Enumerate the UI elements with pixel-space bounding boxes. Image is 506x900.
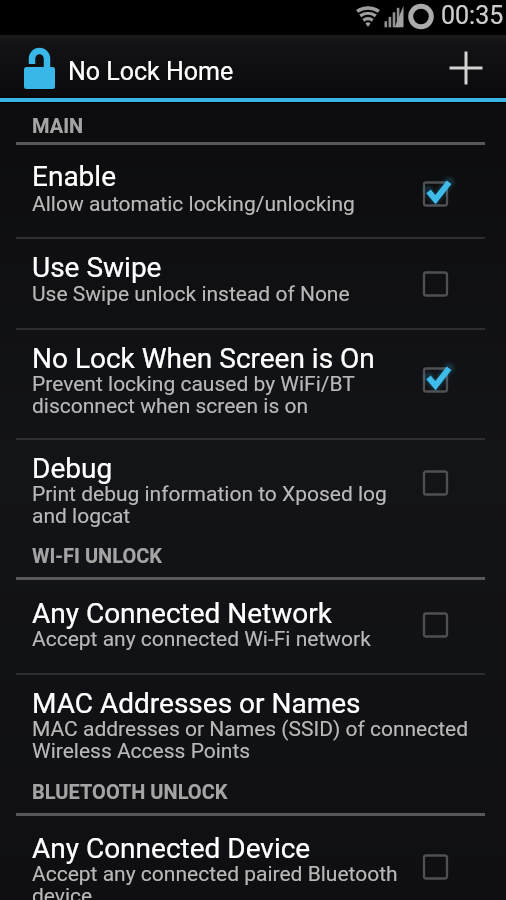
staticText: BLUETOOTH UNLOCK [32,780,228,803]
button[interactable]: MAC Addresses or Names [0,675,506,778]
staticText: Prevent locking caused by WiFi/BT discon… [32,372,355,418]
staticText: No Lock When Screen is On [32,342,375,375]
button[interactable]: No Lock When Screen is On [0,330,506,438]
staticText: Any Connected Device [32,832,311,865]
button[interactable] [436,38,496,96]
button[interactable]: Use Swipe [0,239,506,328]
staticText: Print debug information to Xposed log an… [32,482,387,528]
staticText: Use Swipe unlock instead of None [32,282,350,307]
staticText: MAIN [32,114,84,137]
staticText: Allow automatic locking/unlocking [32,192,355,217]
staticText: Accept any connected Wi-Fi network [32,627,371,652]
staticText: Accept any connected paired Bluetooth de… [32,862,398,900]
staticText: Use Swipe [32,251,162,284]
button[interactable]: Any Connected Network [0,580,506,673]
staticText: No Lock Home [68,57,234,86]
staticText: WI-FI UNLOCK [32,544,162,567]
staticText: 00:35 [441,1,504,30]
staticText: MAC Addresses or Names [32,687,361,720]
staticText: MAC addresses or Names (SSID) of connect… [32,717,469,763]
staticText: Any Connected Network [32,597,332,630]
staticText: Enable [32,160,116,193]
button[interactable]: Debug [0,440,506,533]
button[interactable]: Enable [0,144,506,238]
staticText: Debug [32,452,113,485]
button[interactable]: Any Connected Device [0,816,506,900]
